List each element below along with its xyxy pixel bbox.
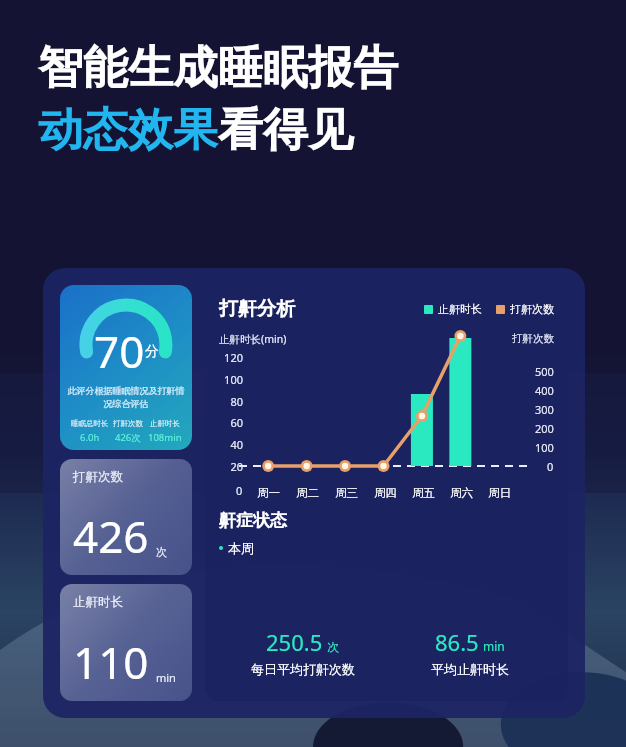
staticText: 周二 bbox=[296, 486, 319, 500]
staticText: 周五 bbox=[412, 486, 435, 500]
staticText: 86.5 bbox=[435, 627, 479, 657]
staticText: 300 bbox=[535, 402, 554, 417]
staticText: 周一 bbox=[257, 486, 280, 500]
staticText: min bbox=[483, 638, 505, 654]
staticText: 次 bbox=[156, 545, 167, 559]
staticText: 周六 bbox=[450, 486, 473, 500]
staticText: 看得见 bbox=[218, 102, 353, 159]
staticText: 200 bbox=[535, 421, 554, 436]
staticText: 20 bbox=[219, 459, 243, 474]
staticText: 40 bbox=[219, 437, 243, 452]
staticText: min bbox=[156, 670, 176, 685]
staticText: 80 bbox=[219, 394, 243, 409]
staticText: 鼾症状态 bbox=[219, 510, 287, 531]
staticText: 打鼾次数 bbox=[510, 302, 554, 316]
staticText: 100 bbox=[535, 440, 554, 455]
staticText: 周日 bbox=[488, 486, 511, 500]
staticText: 分 bbox=[145, 343, 159, 361]
staticText: 周四 bbox=[374, 486, 397, 500]
staticText: 打鼾次数 bbox=[512, 332, 554, 345]
button[interactable]: 止鼾时长 bbox=[60, 584, 192, 701]
button[interactable]: 打鼾次数 bbox=[60, 459, 192, 575]
staticText: 打鼾次数 bbox=[113, 419, 143, 428]
staticText: 0 bbox=[547, 459, 554, 474]
button[interactable]: 止鼾时长 bbox=[424, 302, 482, 316]
staticText: 120 bbox=[219, 350, 243, 365]
staticText: 次 bbox=[327, 639, 339, 654]
staticText: 70 bbox=[94, 321, 145, 381]
button[interactable]: 70 bbox=[60, 285, 192, 450]
staticText: 100 bbox=[219, 372, 243, 387]
staticText: 500 bbox=[535, 364, 554, 379]
staticText: 止鼾时长 bbox=[73, 594, 123, 610]
staticText: 止鼾时长 bbox=[150, 419, 180, 428]
staticText: 426 bbox=[73, 506, 149, 566]
staticText: 智能生成睡眠报告 bbox=[38, 40, 398, 97]
staticText: 0 bbox=[236, 483, 243, 498]
staticText: 6.0h bbox=[80, 431, 100, 444]
staticText: 426次 bbox=[115, 431, 141, 444]
staticText: 打鼾次数 bbox=[73, 469, 123, 485]
staticText: 108min bbox=[148, 431, 182, 444]
staticText: 睡眠总时长 bbox=[71, 419, 109, 428]
staticText: 110 bbox=[73, 632, 149, 692]
staticText: 本周 bbox=[228, 540, 254, 556]
staticText: 周三 bbox=[335, 486, 358, 500]
staticText: 60 bbox=[219, 415, 243, 430]
staticText: 每日平均打鼾次数 bbox=[251, 661, 355, 677]
staticText: 平均止鼾时长 bbox=[431, 661, 509, 677]
staticText: 250.5 bbox=[266, 627, 323, 657]
staticText: 此评分根据睡眠情况及打鼾情况综合评估 bbox=[66, 385, 186, 409]
staticText: 400 bbox=[535, 383, 554, 398]
button[interactable]: 打鼾次数 bbox=[496, 302, 554, 316]
staticText: 动态效果 bbox=[38, 102, 218, 159]
staticText: 止鼾时长 bbox=[438, 302, 482, 316]
staticText: 打鼾分析 bbox=[219, 297, 295, 321]
staticText: 止鼾时长(min) bbox=[219, 332, 287, 346]
